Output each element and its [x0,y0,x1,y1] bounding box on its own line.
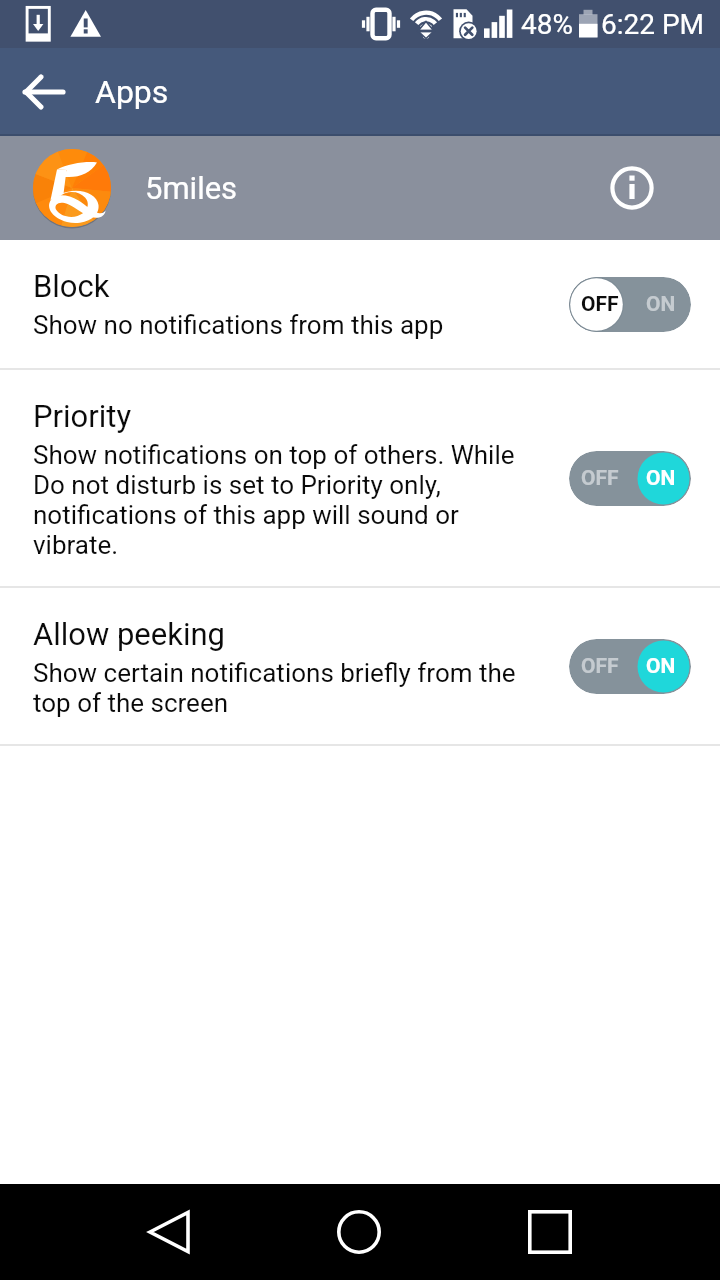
staticText: ON [646,466,676,491]
button[interactable]: Priority [0,370,720,586]
staticText: Show certain notifications briefly from … [33,658,548,718]
staticText: Apps [95,73,169,111]
staticText: OFF [581,292,619,317]
button[interactable]: Block [0,240,720,368]
staticText: Priority [33,398,132,435]
button[interactable]: App info [608,164,656,212]
staticText: 48% [521,8,573,41]
staticText: ON [646,292,676,317]
button[interactable]: Off [569,277,691,332]
staticText: Show no notifications from this app [33,310,444,340]
button[interactable]: 5miles [0,136,720,240]
staticText: 6:22 PM [601,8,705,41]
staticText: ON [646,654,676,679]
button[interactable]: Navigate up [0,48,88,136]
button[interactable]: Home [314,1187,404,1277]
staticText: Show notifications on top of others. Whi… [33,440,548,560]
button[interactable]: Back [124,1187,214,1277]
staticText: Block [33,268,110,305]
button[interactable]: On [569,639,691,694]
staticText: OFF [581,654,619,679]
staticText: Allow peeking [33,616,226,653]
staticText: 5miles [145,170,238,206]
staticText: OFF [581,466,619,491]
button[interactable]: On [569,451,691,506]
button[interactable]: Allow peeking [0,588,720,744]
button[interactable]: Recent apps [505,1187,595,1277]
